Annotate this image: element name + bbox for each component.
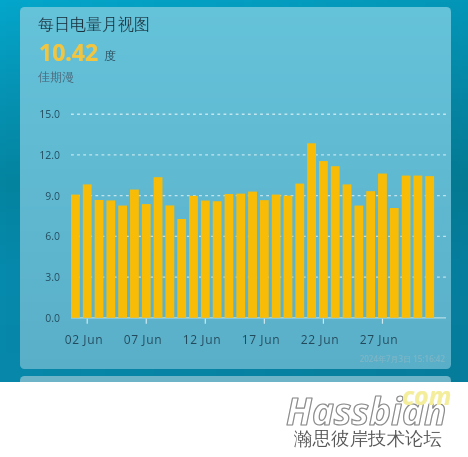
staticText: 瀚思彼岸技术论坛 [294, 427, 442, 450]
staticText: 15.0 [24, 107, 60, 121]
staticText: 3.0 [24, 270, 60, 284]
button[interactable] [20, 376, 451, 382]
staticText: 12.0 [24, 148, 60, 162]
staticText: 02 Jun [56, 331, 112, 347]
staticText: 每日电量月视图 [38, 15, 150, 35]
staticText: 9.0 [24, 189, 60, 203]
staticText: 12 Jun [174, 331, 230, 347]
staticText: 度 [104, 48, 116, 63]
staticText: 0.0 [24, 311, 60, 325]
staticText: 17 Jun [233, 331, 289, 347]
button[interactable]: 每日电量月视图 [20, 7, 451, 369]
staticText: com [402, 378, 452, 412]
staticText: 10.42 [39, 36, 99, 67]
staticText: 22 Jun [292, 331, 348, 347]
staticText: 佳期漫 [38, 69, 74, 84]
staticText: 6.0 [24, 229, 60, 243]
staticText: 27 Jun [351, 331, 407, 347]
staticText: 07 Jun [115, 331, 171, 347]
staticText: Hassbian [286, 385, 447, 435]
staticText: 2024年7月3日 15:16:42 [345, 353, 445, 364]
